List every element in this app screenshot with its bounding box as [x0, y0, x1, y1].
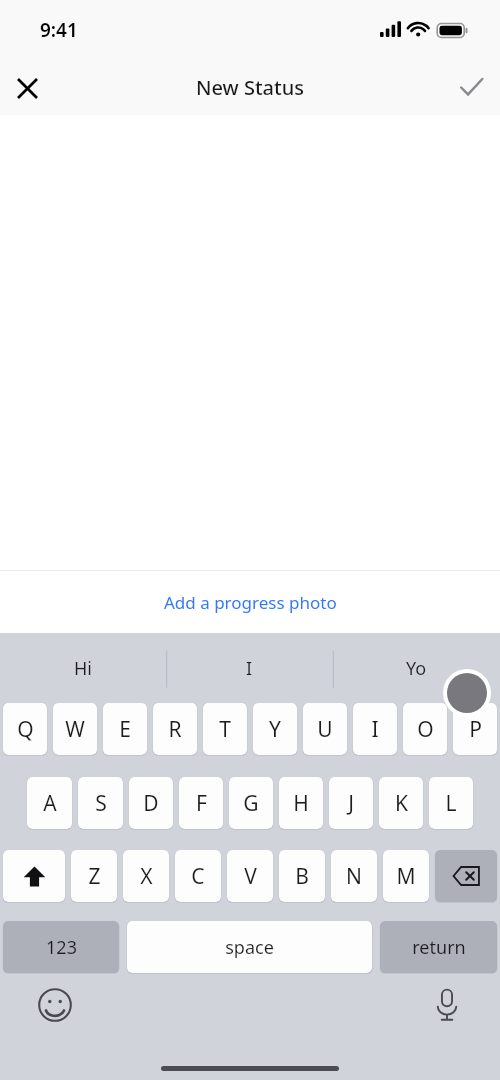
staticText: I: [371, 715, 379, 744]
button[interactable]: space: [127, 921, 372, 973]
staticText: W: [65, 715, 85, 744]
button[interactable]: G: [229, 777, 273, 829]
staticText: H: [293, 789, 309, 818]
button[interactable]: Q: [3, 703, 47, 755]
button[interactable]: 123: [3, 921, 119, 973]
button[interactable]: Yo: [333, 633, 500, 703]
button[interactable]: M: [383, 850, 429, 902]
button[interactable]: L: [429, 777, 473, 829]
button[interactable]: I: [353, 703, 397, 755]
staticText: 9:41: [40, 17, 78, 43]
staticText: Yo: [406, 656, 427, 681]
button[interactable]: Dictation: [423, 981, 471, 1029]
button[interactable]: Close: [0, 61, 54, 115]
staticText: Hi: [74, 656, 92, 681]
staticText: A: [43, 789, 57, 818]
button[interactable]: S: [78, 777, 123, 829]
button[interactable]: Hi: [0, 633, 166, 703]
staticText: 123: [46, 935, 77, 960]
staticText: Q: [17, 715, 34, 744]
staticText: I: [246, 656, 253, 681]
staticText: space: [225, 935, 274, 960]
staticText: D: [143, 789, 159, 818]
button[interactable]: V: [227, 850, 273, 902]
button[interactable]: D: [129, 777, 173, 829]
button[interactable]: Emoji: [31, 981, 79, 1029]
staticText: return: [412, 935, 466, 960]
staticText: E: [119, 715, 131, 744]
button[interactable]: R: [153, 703, 197, 755]
staticText: Add a progress photo: [164, 591, 337, 614]
staticText: T: [219, 715, 231, 744]
staticText: G: [243, 789, 259, 818]
button[interactable]: H: [279, 777, 323, 829]
staticText: U: [317, 715, 333, 744]
button[interactable]: O: [403, 703, 447, 755]
staticText: O: [417, 715, 434, 744]
staticText: F: [196, 789, 207, 818]
staticText: M: [396, 862, 416, 891]
button[interactable]: E: [103, 703, 147, 755]
staticText: B: [295, 862, 309, 891]
button[interactable]: Z: [71, 850, 117, 902]
button[interactable]: Backspace: [435, 850, 497, 902]
staticText: V: [244, 862, 257, 891]
button[interactable]: Y: [253, 703, 297, 755]
staticText: New Status: [196, 74, 304, 101]
staticText: K: [395, 789, 408, 818]
button[interactable]: T: [203, 703, 247, 755]
staticText: J: [348, 789, 354, 818]
button[interactable]: Done: [442, 60, 500, 115]
staticText: Y: [269, 715, 281, 744]
button[interactable]: Shift: [3, 850, 65, 902]
button[interactable]: J: [329, 777, 373, 829]
staticText: C: [191, 862, 205, 891]
button[interactable]: N: [331, 850, 377, 902]
button[interactable]: I: [166, 633, 333, 703]
button[interactable]: A: [27, 777, 72, 829]
staticText: Z: [88, 862, 101, 891]
staticText: R: [168, 715, 182, 744]
button[interactable]: C: [175, 850, 221, 902]
button[interactable]: U: [303, 703, 347, 755]
staticText: S: [95, 789, 107, 818]
button[interactable]: return: [380, 921, 497, 973]
staticText: L: [445, 789, 457, 818]
button[interactable]: B: [279, 850, 325, 902]
button[interactable]: W: [53, 703, 97, 755]
button[interactable]: P: [453, 703, 497, 755]
staticText: X: [140, 862, 153, 891]
button[interactable]: F: [179, 777, 223, 829]
button[interactable]: X: [123, 850, 169, 902]
staticText: P: [469, 715, 482, 744]
button[interactable]: Add a progress photo: [0, 571, 500, 633]
button[interactable]: K: [379, 777, 423, 829]
staticText: N: [346, 862, 362, 891]
